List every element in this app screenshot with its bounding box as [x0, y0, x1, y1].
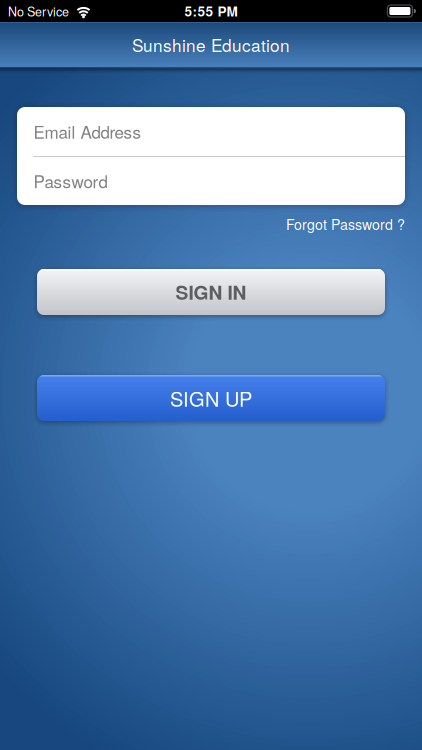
button[interactable]: Password: [17, 157, 405, 205]
staticText: SIGN UP: [170, 384, 252, 412]
button[interactable]: Email Address: [17, 107, 405, 156]
staticText: No Service: [8, 2, 69, 20]
staticText: Sunshine Education: [132, 32, 290, 57]
button[interactable]: Forgot Password ?: [286, 214, 405, 234]
button[interactable]: SIGN UP: [37, 375, 385, 421]
staticText: 5:55 PM: [184, 1, 237, 21]
staticText: Forgot Password ?: [286, 214, 405, 234]
staticText: Email Address: [33, 119, 141, 144]
staticText: SIGN IN: [175, 278, 246, 306]
button[interactable]: SIGN IN: [37, 269, 385, 315]
staticText: Password: [33, 169, 107, 193]
